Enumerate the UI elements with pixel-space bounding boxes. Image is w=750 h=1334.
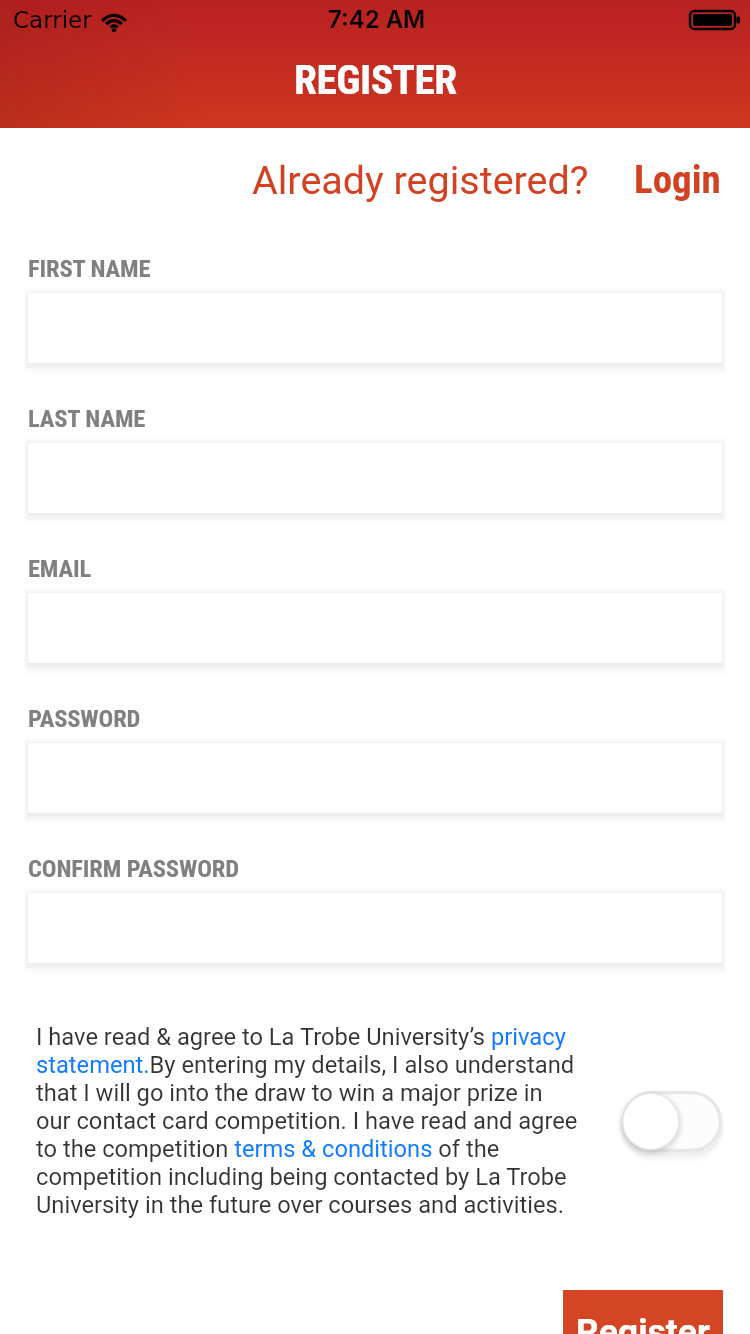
other: Wi-Fi signal [100, 10, 128, 32]
button[interactable]: Register [563, 1290, 723, 1334]
button[interactable] [16, 584, 734, 678]
staticText: Login [634, 157, 721, 203]
staticText: Carrier [13, 7, 92, 34]
staticText: LAST NAME [28, 404, 146, 433]
staticText: CONFIRM PASSWORD [28, 854, 239, 883]
button[interactable] [16, 734, 734, 828]
staticText: Already registered? [252, 157, 589, 203]
staticText: EMAIL [28, 554, 92, 583]
button[interactable]: Login [634, 157, 721, 203]
button[interactable] [16, 284, 734, 378]
staticText: Register [576, 1311, 710, 1334]
button[interactable] [16, 884, 734, 978]
staticText: FIRST NAME [28, 254, 151, 283]
staticText: 7:42 AM [328, 5, 426, 34]
staticText: I have read & agree to La Trobe Universi… [36, 1023, 579, 1219]
button[interactable] [16, 434, 734, 528]
button[interactable]: Accept terms and conditions toggle [614, 1085, 724, 1156]
staticText: REGISTER [294, 55, 457, 104]
staticText: PASSWORD [28, 704, 141, 733]
other: Battery full [690, 11, 738, 29]
